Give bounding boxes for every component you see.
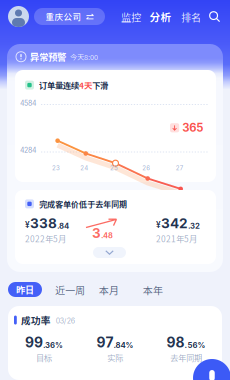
staticText: 4284 [20,146,36,154]
staticText: ¥ [25,220,30,230]
staticText: .84% [113,341,133,350]
staticText: 订单量连续 [39,79,79,91]
staticText: 去年同期 [170,352,202,364]
staticText: 实际 [107,352,123,364]
staticText: .48 [101,231,113,240]
staticText: 近一周 [55,283,85,297]
staticText: 分析 [149,9,171,24]
staticText: 目标 [36,352,52,364]
staticText: 99 [25,334,43,351]
staticText: .84 [57,221,69,231]
staticText: 97 [96,334,113,351]
staticText: 下滑 [92,79,108,91]
staticText: 排名 [181,10,201,24]
staticText: 26 [142,164,150,172]
button[interactable]: 昨日 [8,282,42,297]
button[interactable]: Voice assistant [193,359,230,380]
staticText: 25 [110,164,118,172]
button[interactable]: Search [209,11,221,23]
staticText: 4584 [20,99,36,107]
staticText: 342 [161,215,188,231]
button[interactable]: 重庆公司 [34,8,105,25]
staticText: 昨日 [16,283,34,296]
button[interactable]: 排名 [180,11,202,23]
button[interactable]: 本月 [98,283,120,297]
staticText: 23 [52,164,60,172]
staticText: 本年 [143,283,163,297]
staticText: 338 [30,215,57,231]
staticText: 24 [80,164,88,172]
button[interactable]: 近一周 [55,283,85,297]
button[interactable]: 本年 [142,283,164,297]
staticText: 今天8:00 [70,51,98,62]
staticText: 2022年5月 [25,232,66,245]
staticText: 98 [166,334,184,351]
button[interactable]: Profile [8,6,29,27]
staticText: .32 [188,221,200,231]
staticText: .56% [184,341,205,350]
staticText: 重庆公司 [45,10,81,23]
staticText: ¥ [156,220,161,230]
staticText: 成功率 [21,313,51,327]
staticText: 2021年5月 [156,232,197,245]
staticText: 27 [176,164,183,172]
staticText: 完成客单价低于去年同期 [39,198,127,210]
button[interactable]: 监控 [120,11,142,23]
staticText: 异常预警 [30,50,66,63]
button[interactable]: 分析 [149,10,172,23]
staticText: 365 [182,121,203,135]
staticText: 本月 [99,283,119,297]
staticText: 4天 [79,79,92,91]
button[interactable]: Show more [93,247,126,258]
staticText: .36% [43,341,63,350]
staticText: 03/26 [56,317,75,325]
staticText: 监控 [121,10,141,24]
staticText: 3 [92,225,101,241]
